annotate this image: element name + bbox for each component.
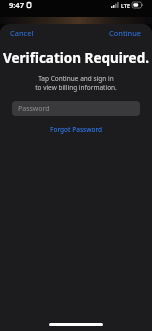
staticText: Verification Required. — [0, 49, 152, 67]
button[interactable]: Cancel — [0, 25, 44, 41]
staticText: Cancel — [10, 28, 34, 38]
button[interactable]: Password — [12, 101, 140, 116]
staticText: Forgot Password — [50, 125, 103, 134]
button[interactable]: Forgot Password — [42, 123, 111, 136]
staticText: Password — [18, 104, 50, 114]
staticText: 9:47 — [9, 0, 24, 10]
staticText: LTE — [121, 2, 130, 9]
staticText: Continue — [109, 28, 142, 38]
button[interactable]: Continue — [99, 25, 152, 41]
staticText: Tap Continue and sign in to view billing… — [0, 74, 152, 92]
